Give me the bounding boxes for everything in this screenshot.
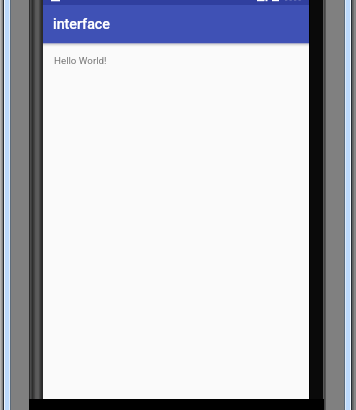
staticText: Hello World! (54, 55, 107, 66)
staticText: interface (53, 16, 110, 33)
button[interactable]: interface (43, 5, 309, 43)
